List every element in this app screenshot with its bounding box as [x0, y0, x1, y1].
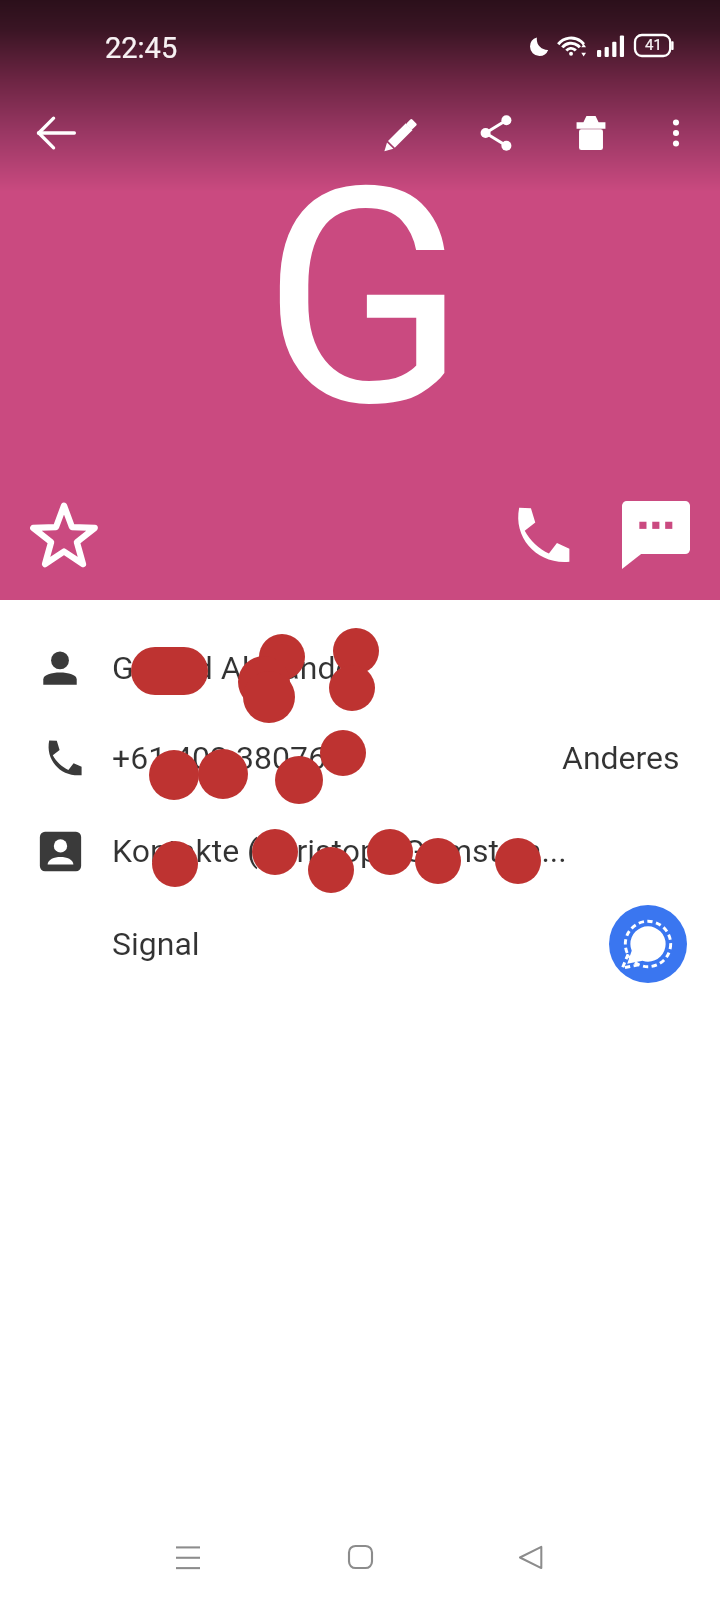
- button[interactable]: Back: [495, 1521, 567, 1593]
- staticText: 41: [645, 36, 662, 54]
- button[interactable]: Add to favorites: [28, 499, 100, 571]
- button[interactable]: Signal: [0, 898, 720, 990]
- button[interactable]: Home: [324, 1521, 396, 1593]
- button[interactable]: Delete: [555, 97, 627, 169]
- button[interactable]: Gerlind Alexander: [0, 621, 720, 715]
- staticText: Gerlind Alexander: [112, 649, 364, 687]
- button[interactable]: Kontakte (Christoph Grimstein...: [0, 805, 720, 897]
- button[interactable]: Open in Signal: [609, 905, 687, 983]
- staticText: Signal: [112, 925, 200, 963]
- staticText: G: [262, 123, 467, 475]
- button[interactable]: More options: [640, 97, 712, 169]
- button[interactable]: Edit: [364, 97, 436, 169]
- button[interactable]: Recent apps: [152, 1520, 224, 1592]
- button[interactable]: Send message: [620, 499, 692, 571]
- button[interactable]: +61 402 380768: [0, 712, 720, 804]
- button[interactable]: Share: [460, 97, 532, 169]
- staticText: Kontakte (Christoph Grimstein...: [112, 832, 567, 870]
- staticText: 22:45: [105, 31, 178, 65]
- button[interactable]: Call: [503, 499, 575, 571]
- staticText: Anderes: [562, 739, 680, 777]
- button[interactable]: Back: [20, 97, 92, 169]
- staticText: +61 402 380768: [112, 739, 344, 777]
